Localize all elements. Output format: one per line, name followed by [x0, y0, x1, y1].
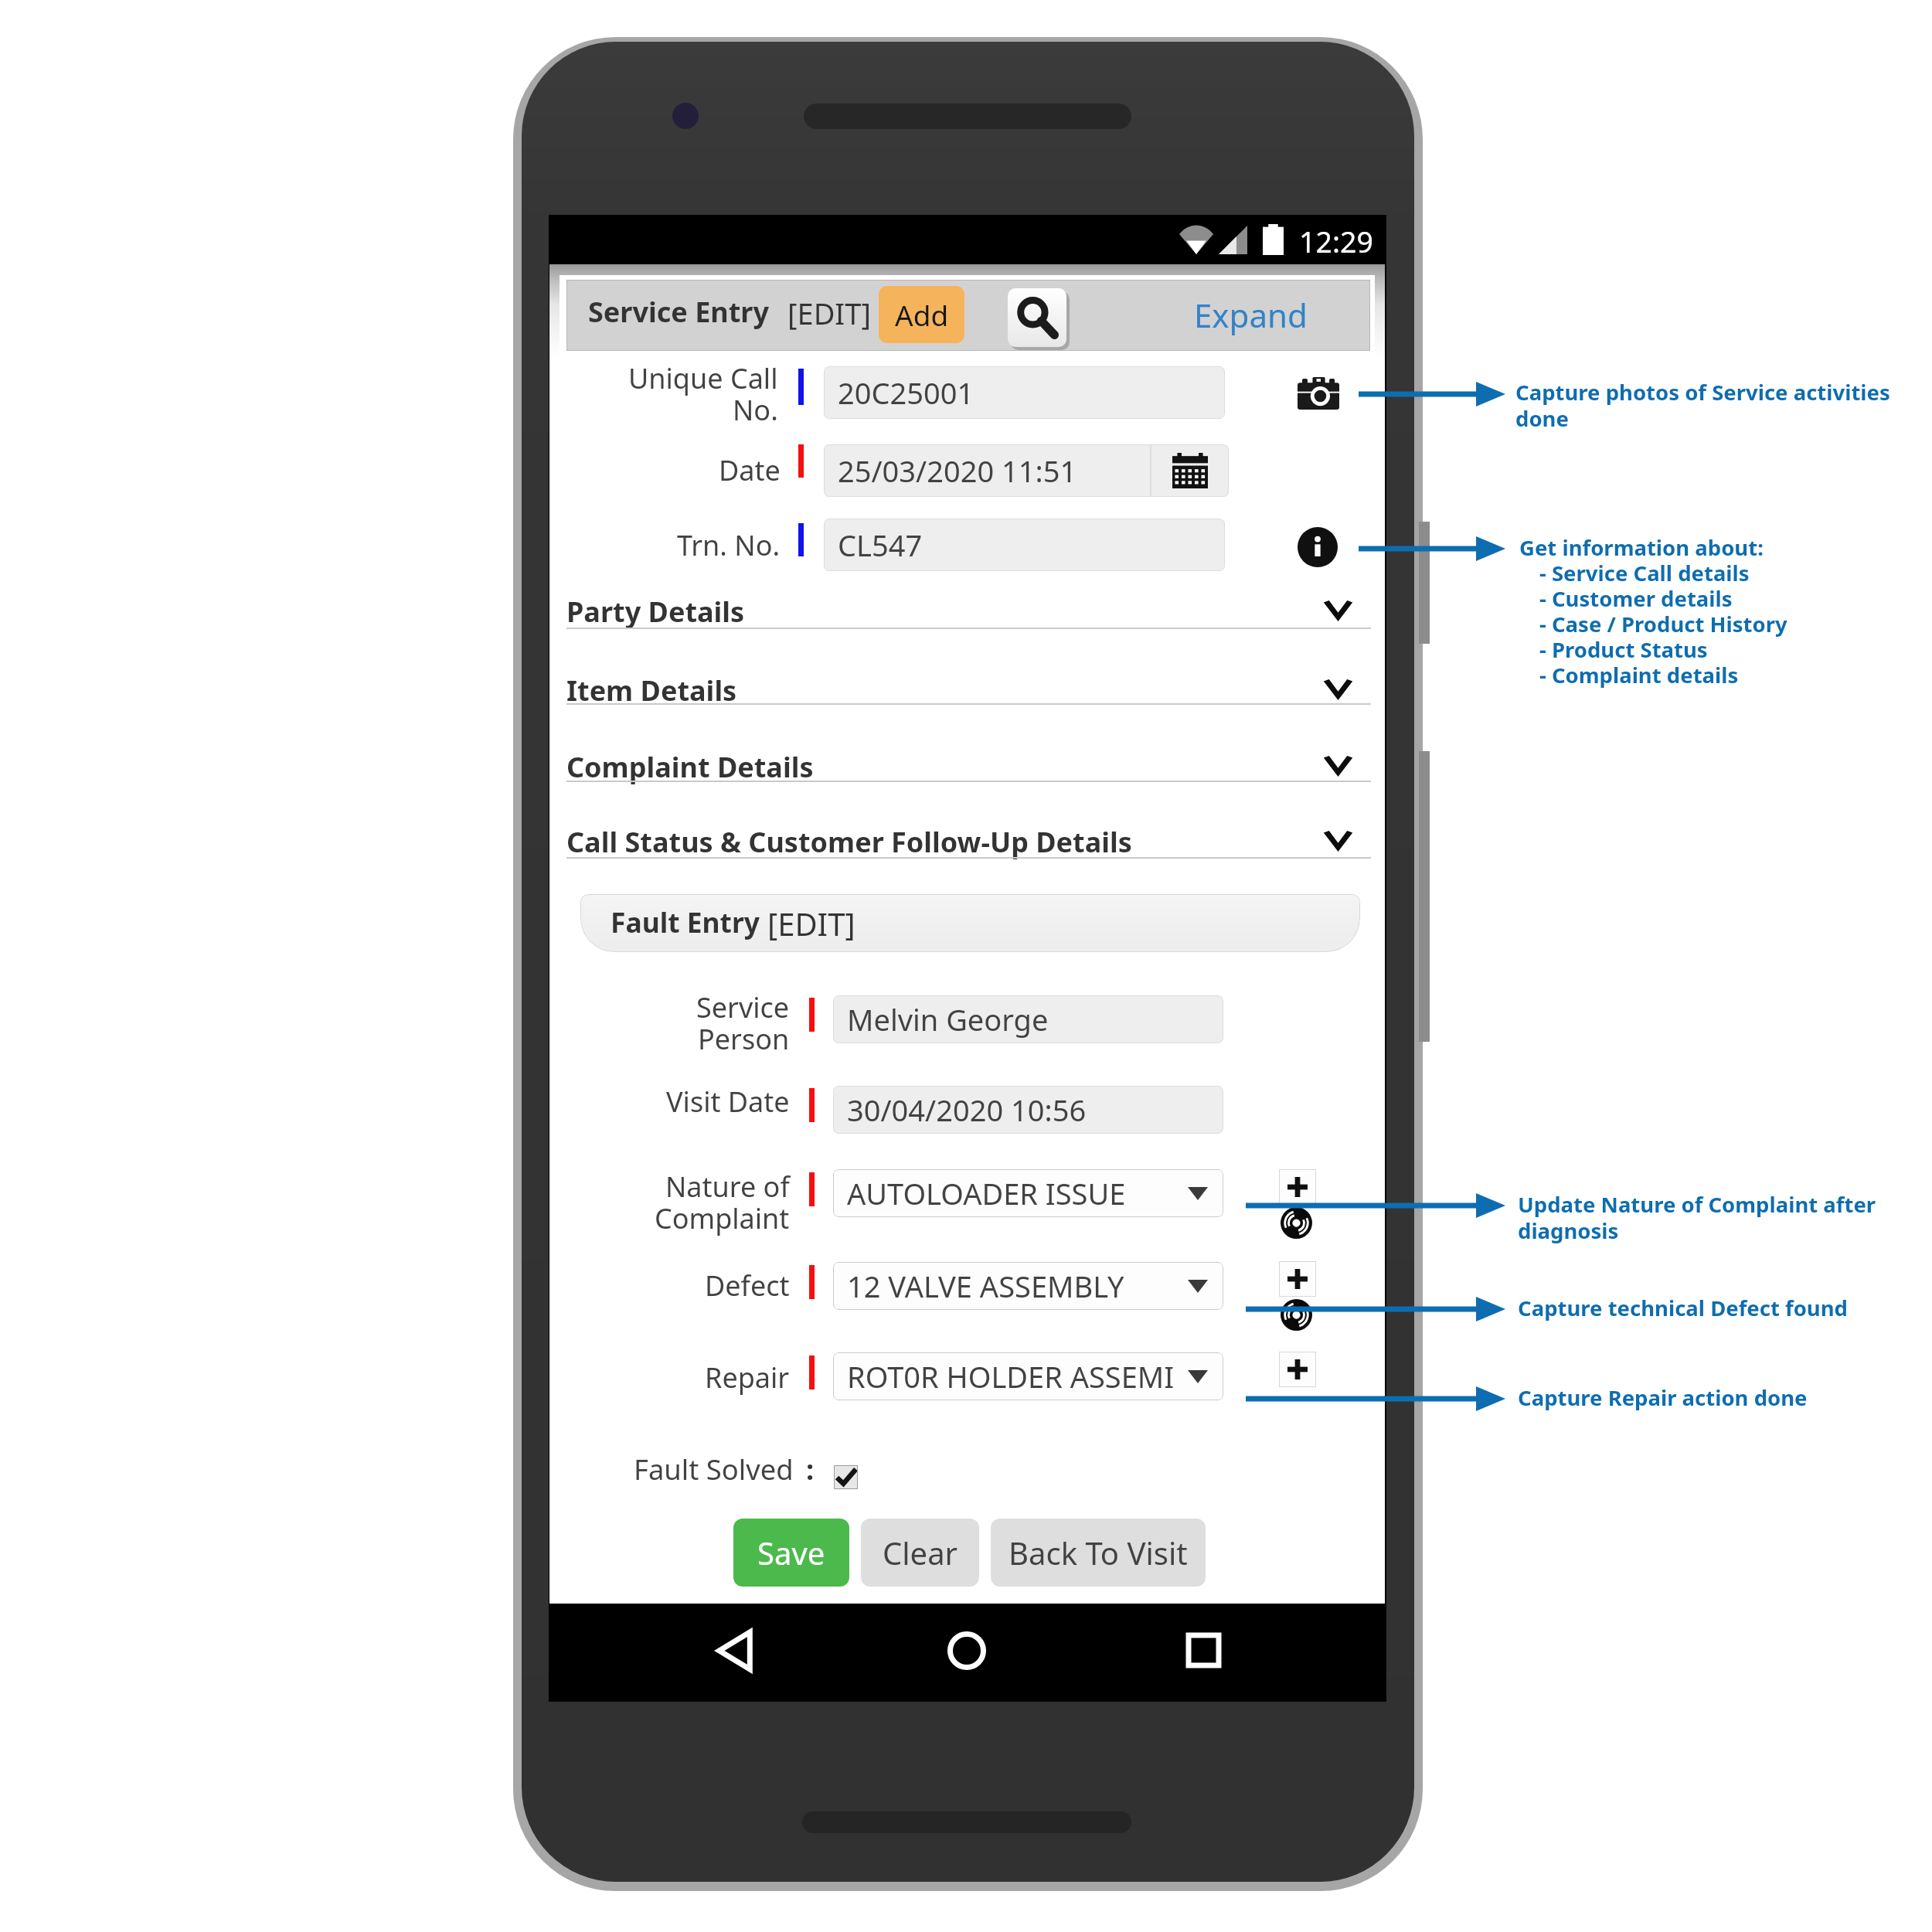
- staticText: diagnosis: [1518, 1216, 1619, 1245]
- button[interactable]: Capture photo: [1298, 377, 1339, 410]
- button[interactable]: Recents: [1140, 1601, 1267, 1699]
- staticText: [EDIT]: [767, 903, 855, 944]
- staticText: - Case / Product History: [1539, 610, 1787, 638]
- staticText: Person: [698, 1020, 790, 1058]
- button[interactable]: Record audio: [1281, 1207, 1312, 1239]
- button[interactable]: Add new: [1279, 1169, 1316, 1205]
- staticText: AUTOLOADER ISSUE: [847, 1173, 1126, 1213]
- staticText: No.: [733, 391, 778, 429]
- staticText: Fault Entry: [611, 903, 760, 940]
- staticText: 12:29: [1299, 222, 1373, 261]
- button[interactable]: ROT0R HOLDER ASSEMI: [833, 1352, 1223, 1400]
- staticText: Capture Repair action done: [1518, 1383, 1808, 1412]
- button[interactable]: Melvin George: [833, 995, 1223, 1043]
- button[interactable]: Clear: [861, 1519, 979, 1587]
- staticText: Save: [757, 1532, 825, 1573]
- button[interactable]: Search: [1008, 288, 1066, 347]
- staticText: Unique Call: [628, 359, 778, 397]
- staticText: Service Entry: [588, 293, 770, 331]
- staticText: [EDIT]: [787, 293, 871, 333]
- staticText: Complaint: [655, 1199, 790, 1237]
- button[interactable]: Add: [879, 286, 964, 343]
- button[interactable]: Complaint Details: [566, 733, 1371, 798]
- staticText: Capture technical Defect found: [1518, 1294, 1848, 1322]
- button[interactable]: Home: [903, 1601, 1030, 1699]
- button[interactable]: Party Details: [566, 578, 1371, 643]
- staticText: - Service Call details: [1539, 559, 1750, 587]
- staticText: - Complaint details: [1539, 661, 1739, 689]
- staticText: Add: [895, 295, 949, 334]
- staticText: Service: [696, 988, 790, 1026]
- staticText: done: [1515, 404, 1569, 433]
- button[interactable]: AUTOLOADER ISSUE: [833, 1169, 1223, 1217]
- staticText: :: [806, 1450, 815, 1488]
- button[interactable]: 12 VALVE ASSEMBLY: [833, 1262, 1223, 1310]
- staticText: 20C25001: [838, 372, 975, 413]
- staticText: Date: [719, 451, 781, 489]
- staticText: 12 VALVE ASSEMBLY: [847, 1266, 1124, 1306]
- button[interactable]: Save: [733, 1519, 849, 1587]
- staticText: - Customer details: [1539, 584, 1733, 613]
- staticText: Trn. No.: [677, 526, 781, 564]
- staticText: Expand: [1194, 293, 1308, 337]
- button[interactable]: Record audio: [1281, 1299, 1312, 1331]
- staticText: Defect: [705, 1267, 790, 1304]
- button[interactable]: Add new: [1279, 1352, 1316, 1387]
- staticText: Get information about:: [1519, 533, 1764, 562]
- staticText: Party Details: [566, 593, 745, 631]
- staticText: Call Status & Customer Follow-Up Details: [566, 823, 1132, 861]
- staticText: Nature of: [665, 1168, 790, 1206]
- staticText: - Product Status: [1539, 635, 1708, 664]
- button[interactable]: CL547: [824, 519, 1225, 571]
- staticText: Complaint Details: [566, 748, 814, 786]
- staticText: Back To Visit: [1009, 1532, 1188, 1573]
- staticText: CL547: [838, 525, 923, 565]
- staticText: Fault Solved: [634, 1450, 794, 1488]
- staticText: Clear: [883, 1532, 958, 1573]
- staticText: Repair: [705, 1359, 790, 1396]
- staticText: 25/03/2020 11:51: [838, 451, 1077, 491]
- button[interactable]: Call Status & Customer Follow-Up Details: [566, 808, 1371, 873]
- button[interactable]: Item Details: [566, 657, 1371, 722]
- staticText: 30/04/2020 10:56: [847, 1090, 1087, 1130]
- button[interactable]: 20C25001: [824, 366, 1225, 419]
- button[interactable]: Add new: [1279, 1261, 1316, 1297]
- button[interactable]: Fault solved: [834, 1465, 858, 1489]
- button[interactable]: Expand: [1182, 291, 1314, 338]
- staticText: Visit Date: [666, 1083, 790, 1121]
- staticText: Melvin George: [847, 999, 1049, 1039]
- button[interactable]: Pick date: [1151, 444, 1229, 497]
- staticText: ROT0R HOLDER ASSEMI: [847, 1356, 1175, 1396]
- button[interactable]: Back: [671, 1601, 798, 1699]
- button[interactable]: Back To Visit: [991, 1519, 1206, 1587]
- staticText: Update Nature of Complaint after: [1518, 1190, 1876, 1219]
- button[interactable]: 30/04/2020 10:56: [833, 1086, 1223, 1134]
- staticText: Item Details: [566, 672, 737, 709]
- button[interactable]: Fault Entry: [580, 894, 1360, 952]
- button[interactable]: Information: [1298, 527, 1338, 567]
- staticText: Capture photos of Service activities: [1515, 378, 1890, 406]
